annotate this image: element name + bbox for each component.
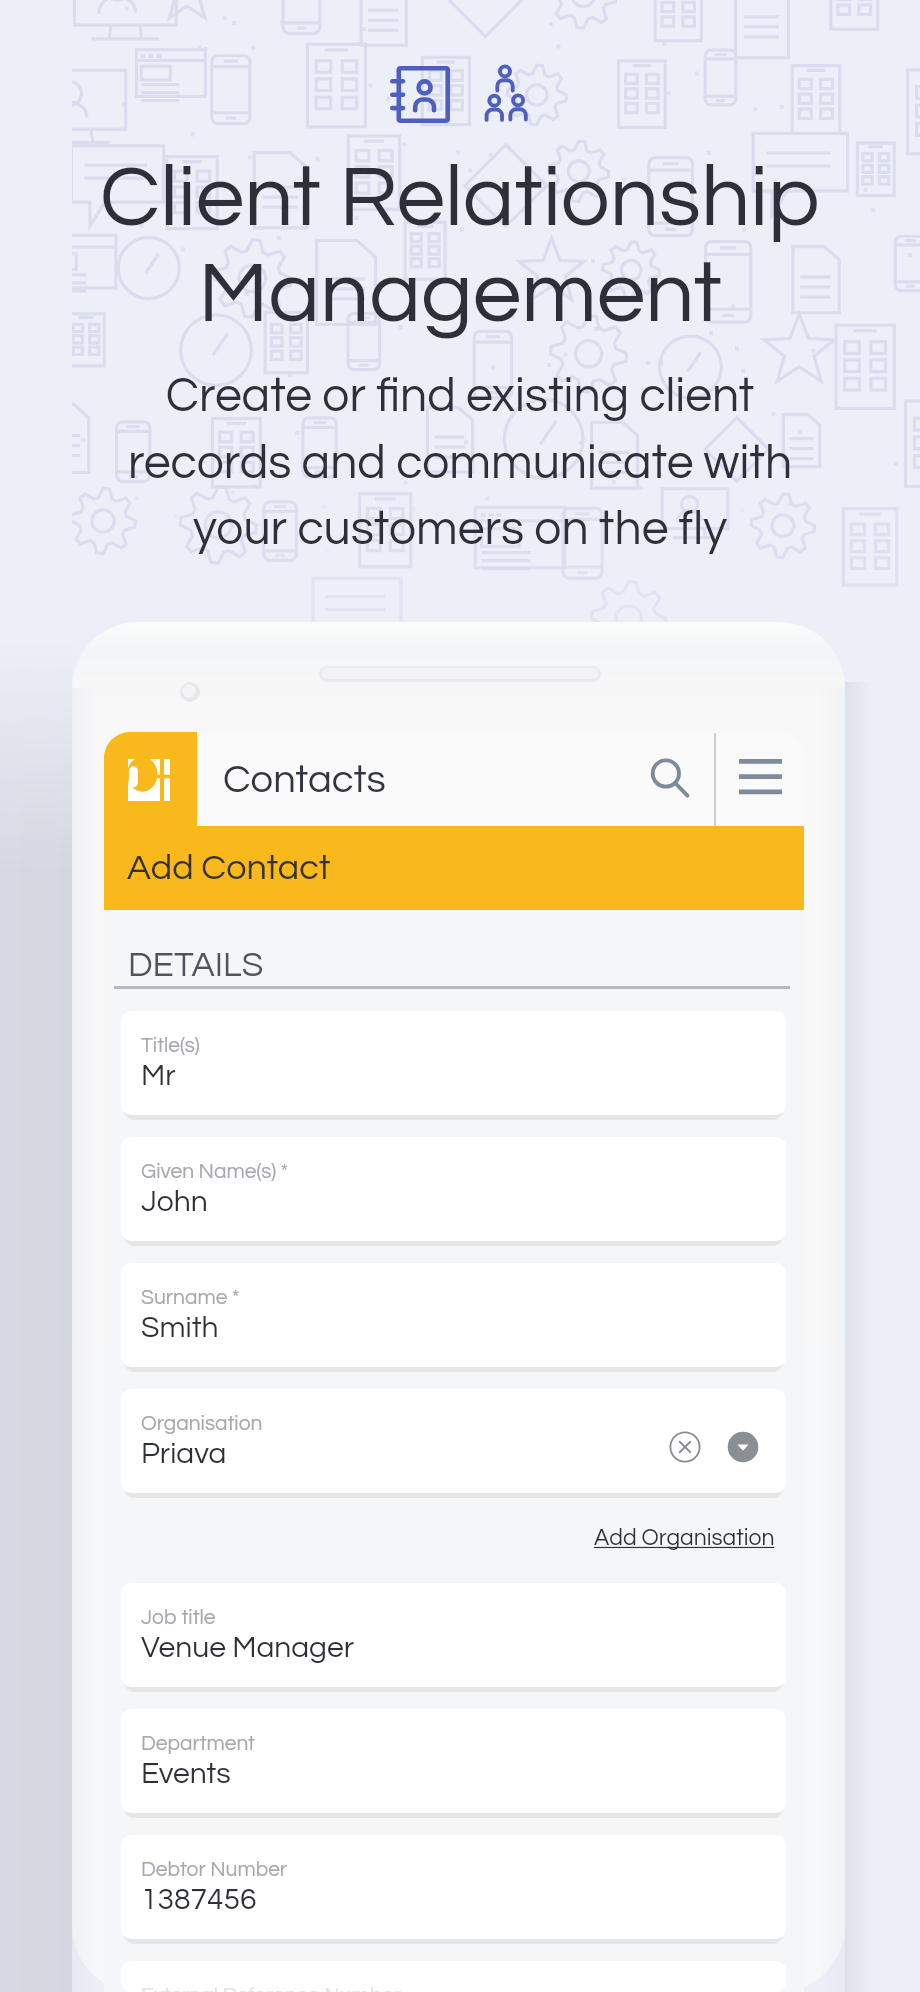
staticText: Client Relationship Management — [0, 154, 920, 340]
staticText: Smith — [141, 1312, 219, 1343]
staticText: Job title — [141, 1607, 216, 1629]
button[interactable]: Given Name(s) * — [121, 1137, 786, 1241]
staticText: Priava — [141, 1438, 227, 1469]
button[interactable]: Debtor Number — [121, 1835, 786, 1939]
button[interactable]: Add Contact — [104, 826, 804, 910]
button[interactable]: Clear organisation — [668, 1430, 702, 1464]
staticText: Events — [141, 1758, 231, 1789]
button[interactable]: Job title — [121, 1583, 786, 1687]
staticText: Department — [141, 1733, 255, 1755]
staticText: John — [141, 1186, 208, 1217]
staticText: Mr — [141, 1060, 176, 1091]
staticText: Add Contact — [127, 849, 331, 886]
button[interactable]: Organisation — [121, 1389, 786, 1493]
staticText: Given Name(s) * — [141, 1161, 289, 1183]
button[interactable]: Search — [626, 732, 714, 826]
button[interactable]: Add Organisation — [594, 1526, 775, 1550]
button[interactable]: Department — [121, 1709, 786, 1813]
button[interactable]: Menu — [716, 732, 804, 826]
staticText: Create or find existing client records a… — [0, 372, 920, 554]
staticText: Surname * — [141, 1287, 240, 1309]
button[interactable]: Priava home — [104, 732, 197, 826]
staticText: DETAILS — [128, 947, 264, 983]
staticText: Contacts — [223, 759, 386, 800]
button[interactable]: Show organisation options — [726, 1430, 760, 1464]
staticText: Venue Manager — [141, 1632, 354, 1663]
staticText: External Reference Number — [141, 1985, 402, 1992]
staticText: 1387456 — [141, 1884, 257, 1915]
staticText: Organisation — [141, 1413, 263, 1435]
button[interactable]: Title(s) — [121, 1011, 786, 1115]
button[interactable]: Surname * — [121, 1263, 786, 1367]
staticText: Title(s) — [141, 1035, 200, 1057]
staticText: Debtor Number — [141, 1859, 288, 1881]
